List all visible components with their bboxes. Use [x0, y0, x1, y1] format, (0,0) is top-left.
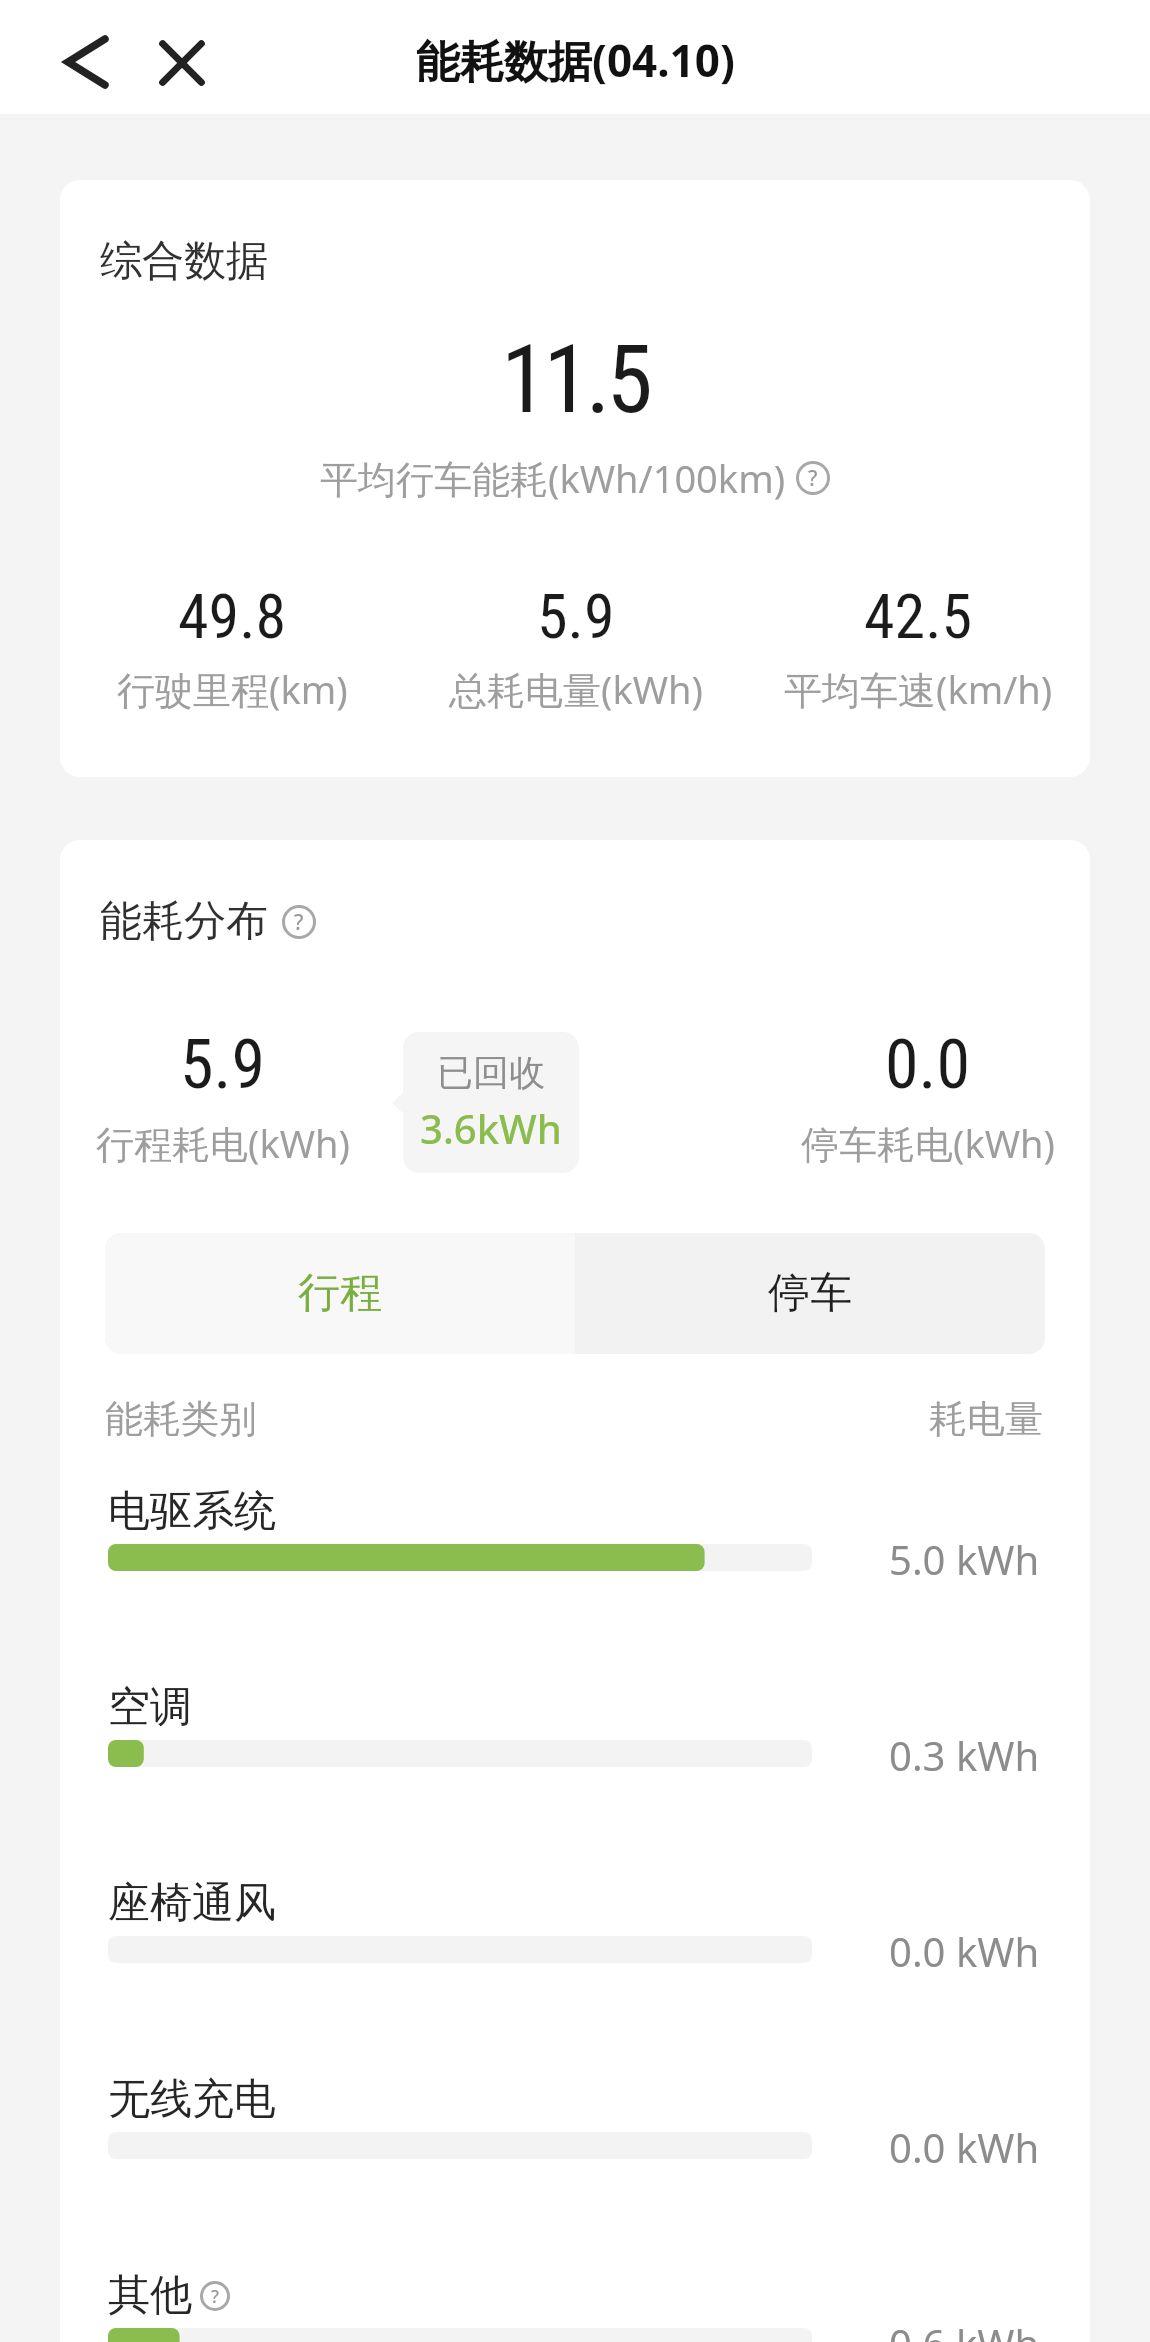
- staticText: 5.0 kWh: [889, 1532, 1040, 1586]
- staticText: 无线充电: [108, 2073, 276, 2126]
- staticText: 综合数据: [100, 235, 268, 288]
- staticText: 能耗分布: [100, 895, 268, 948]
- staticText: 行驶里程(km): [117, 663, 348, 715]
- staticText: 42.5: [864, 580, 973, 653]
- button[interactable]: [54, 29, 118, 93]
- staticText: 电驱系统: [108, 1485, 276, 1538]
- staticText: 停车: [768, 1267, 852, 1320]
- staticText: 能耗类别: [105, 1395, 257, 1443]
- staticText: ?: [294, 908, 304, 937]
- staticText: ?: [808, 464, 818, 493]
- staticText: ?: [211, 2284, 220, 2309]
- staticText: 平均车速(km/h): [784, 663, 1053, 715]
- staticText: 0.0 kWh: [889, 2120, 1040, 2174]
- button[interactable]: [150, 31, 214, 95]
- staticText: 0.0: [885, 1025, 971, 1105]
- staticText: 0.6 kWh: [889, 2316, 1040, 2342]
- staticText: 空调: [108, 1681, 192, 1734]
- staticText: 行程: [298, 1267, 382, 1320]
- staticText: 平均行车能耗(kWh/100km): [320, 452, 786, 504]
- staticText: 已回收: [437, 1050, 545, 1095]
- staticText: 3.6kWh: [420, 1101, 562, 1155]
- button[interactable]: 行程: [105, 1233, 575, 1354]
- staticText: 其他: [108, 2269, 192, 2322]
- staticText: 能耗数据(04.10): [416, 30, 735, 90]
- staticText: 停车耗电(kWh): [801, 1117, 1055, 1169]
- staticText: 49.8: [178, 580, 287, 653]
- staticText: 耗电量: [929, 1395, 1043, 1443]
- staticText: 座椅通风: [108, 1877, 276, 1930]
- staticText: 5.9: [180, 1025, 266, 1105]
- staticText: 行程耗电(kWh): [96, 1117, 350, 1169]
- staticText: 11.5: [501, 325, 649, 435]
- staticText: 0.3 kWh: [889, 1728, 1040, 1782]
- staticText: 总耗电量(kWh): [449, 663, 703, 715]
- staticText: 5.9: [537, 580, 615, 653]
- button[interactable]: 停车: [575, 1233, 1045, 1354]
- staticText: 0.0 kWh: [889, 1924, 1040, 1978]
